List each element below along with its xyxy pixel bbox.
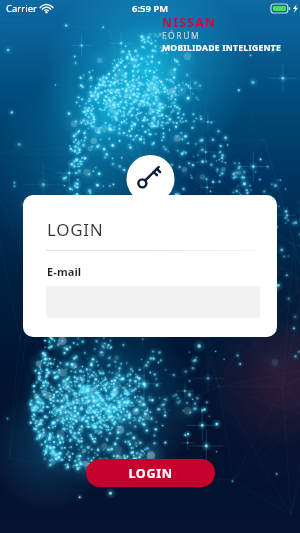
button[interactable]: LOGIN: [86, 459, 215, 487]
staticText: 6:59 PM: [132, 2, 169, 15]
staticText: FÓRUM: [162, 30, 201, 42]
staticText: NISSAN: [162, 14, 217, 30]
staticText: MOBILIDADE INTELIGENTE: [162, 42, 282, 54]
staticText: E-mail: [47, 264, 82, 279]
staticText: LOGIN: [47, 218, 104, 241]
staticText: Carrier: [6, 2, 37, 15]
staticText: LOGIN: [128, 465, 173, 482]
